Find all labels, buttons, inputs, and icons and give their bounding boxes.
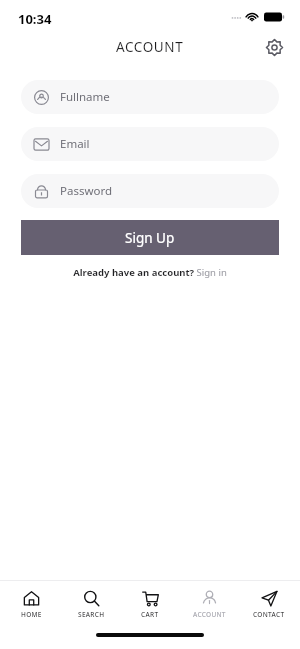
button[interactable]: Password bbox=[21, 174, 279, 208]
staticText: Password bbox=[60, 183, 113, 199]
staticText: HOME bbox=[21, 610, 42, 619]
staticText: CONTACT bbox=[253, 610, 285, 619]
staticText: ACCOUNT bbox=[116, 38, 184, 56]
staticText: CART bbox=[141, 610, 159, 619]
staticText: Email bbox=[60, 136, 90, 152]
staticText: Already have an account? Sign in bbox=[73, 266, 227, 279]
button[interactable]: Settings bbox=[258, 34, 290, 60]
button[interactable]: Fullname bbox=[21, 80, 279, 114]
staticText: Sign Up bbox=[125, 229, 175, 247]
button[interactable]: CONTACT bbox=[241, 587, 297, 622]
staticText: Fullname bbox=[60, 89, 110, 105]
button[interactable]: HOME bbox=[3, 587, 59, 622]
staticText: ACCOUNT bbox=[193, 610, 226, 619]
staticText: SEARCH bbox=[78, 610, 105, 619]
button[interactable]: ACCOUNT bbox=[181, 587, 237, 622]
staticText: 10:34 bbox=[18, 10, 52, 28]
button[interactable]: Email bbox=[21, 127, 279, 161]
button[interactable]: CART bbox=[122, 587, 178, 622]
button[interactable]: Sign Up bbox=[21, 220, 279, 255]
button[interactable]: SEARCH bbox=[63, 587, 119, 622]
